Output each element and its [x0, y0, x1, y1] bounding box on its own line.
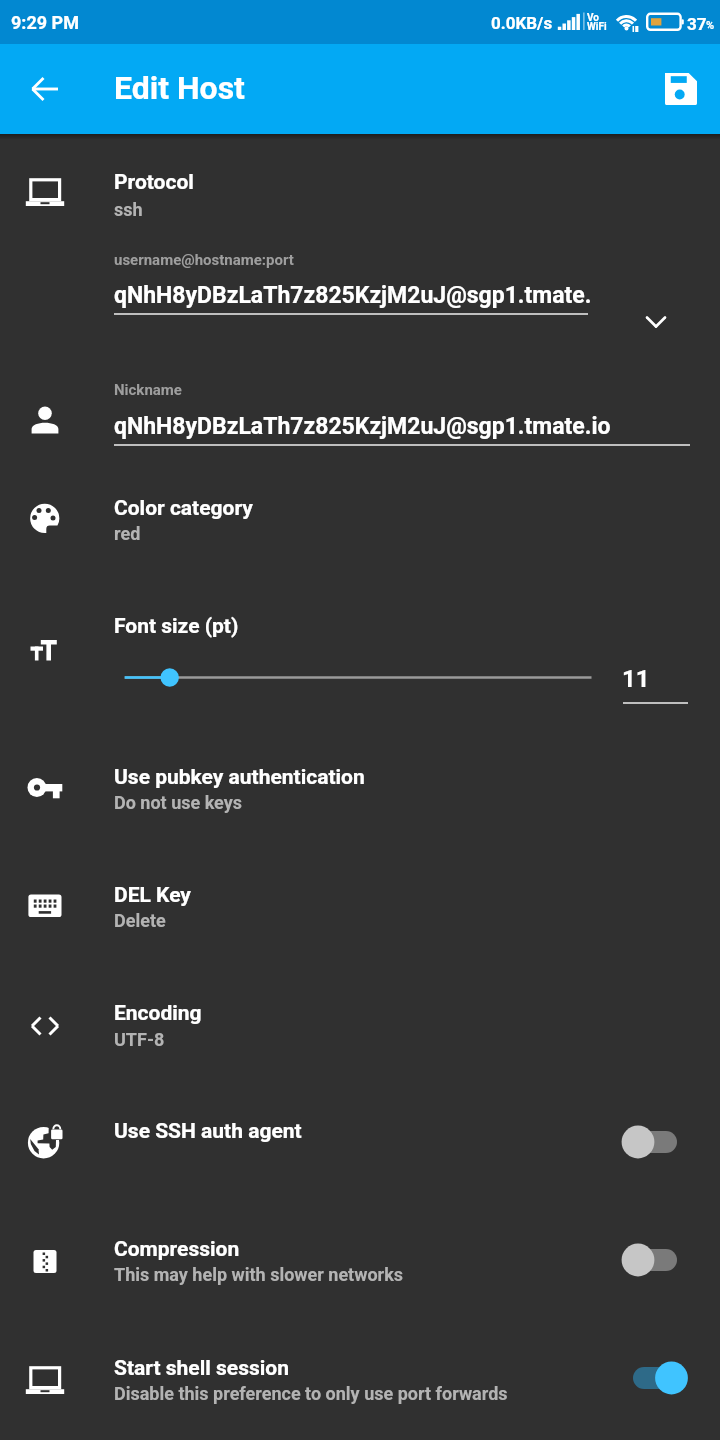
button[interactable] [0, 1316, 720, 1434]
button[interactable] [0, 1084, 720, 1198]
staticText: Delete [114, 910, 166, 931]
button[interactable]: Save [649, 61, 713, 117]
staticText: Use SSH auth agent [114, 1119, 302, 1144]
staticText: Use pubkey authentication [114, 765, 365, 790]
staticText: 11 [622, 665, 650, 693]
button[interactable]: Back [9, 61, 81, 117]
staticText: Start shell session [114, 1356, 289, 1381]
staticText: Color category [114, 496, 253, 521]
button[interactable] [0, 730, 720, 848]
staticText: Protocol [114, 170, 194, 195]
staticText: Vo [587, 12, 599, 24]
staticText: qNhH8yDBzLaTh7z825KzjM2uJ@sgp1.tmate. [114, 282, 592, 309]
button[interactable] [0, 1198, 720, 1316]
staticText: Nickname [114, 381, 182, 399]
staticText: Edit Host [114, 69, 245, 107]
staticText: % [706, 19, 715, 32]
staticText: WiFi [587, 21, 607, 33]
staticText: qNhH8yDBzLaTh7z825KzjM2uJ@sgp1.tmate.io [114, 413, 611, 440]
button[interactable] [0, 240, 720, 352]
staticText: Disable this preference to only use port… [114, 1383, 508, 1404]
button[interactable]: Expand [628, 294, 684, 350]
staticText: 9:29 PM [11, 12, 79, 33]
button[interactable] [0, 966, 720, 1084]
button[interactable]: Toggle on [605, 1350, 705, 1406]
staticText: 37 [687, 14, 707, 34]
staticText: red [114, 523, 141, 544]
staticText: DEL Key [114, 883, 191, 908]
button[interactable] [0, 848, 720, 966]
staticText: Encoding [114, 1001, 202, 1026]
staticText: username@hostname:port [114, 251, 294, 269]
staticText: This may help with slower networks [114, 1264, 404, 1285]
staticText: 0.0KB/s [491, 13, 553, 33]
staticText: Compression [114, 1237, 240, 1262]
button[interactable]: Toggle off [605, 1114, 705, 1170]
button[interactable] [0, 360, 720, 468]
staticText: Do not use keys [114, 792, 243, 813]
staticText: UTF-8 [114, 1029, 165, 1050]
staticText: ssh [114, 199, 143, 220]
button[interactable] [0, 470, 720, 576]
button[interactable] [0, 140, 720, 236]
staticText: Font size (pt) [114, 614, 239, 639]
button[interactable]: Toggle off [605, 1232, 705, 1288]
